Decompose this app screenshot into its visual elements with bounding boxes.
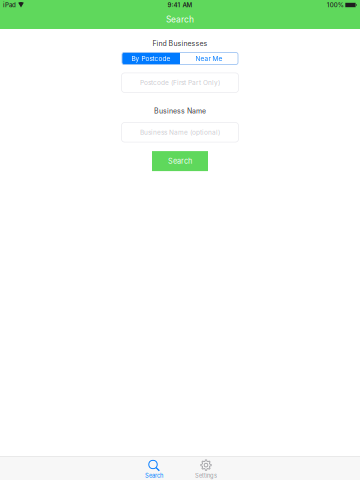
staticText: Postcode (First Part Only) bbox=[140, 79, 220, 87]
staticText: Search bbox=[166, 14, 194, 25]
button[interactable]: Near Me bbox=[180, 52, 238, 64]
button[interactable]: Business Name (optional) bbox=[121, 122, 238, 142]
button[interactable]: Settings bbox=[180, 456, 232, 480]
staticText: 9:41 AM bbox=[167, 1, 192, 9]
button[interactable]: Search bbox=[128, 456, 180, 480]
staticText: Find Businesses bbox=[152, 39, 207, 48]
staticText: Business Name bbox=[154, 107, 206, 115]
staticText: By Postcode bbox=[131, 54, 170, 62]
staticText: Search bbox=[145, 472, 163, 479]
staticText: Search bbox=[168, 157, 192, 166]
button[interactable]: By Postcode bbox=[122, 52, 180, 64]
staticText: 100% bbox=[327, 1, 344, 9]
button[interactable]: Search bbox=[152, 151, 208, 171]
staticText: Business Name (optional) bbox=[140, 128, 220, 136]
staticText: iPad bbox=[3, 1, 16, 9]
button[interactable]: Postcode (First Part Only) bbox=[121, 73, 238, 92]
staticText: Near Me bbox=[195, 54, 222, 62]
staticText: Settings bbox=[195, 472, 217, 479]
